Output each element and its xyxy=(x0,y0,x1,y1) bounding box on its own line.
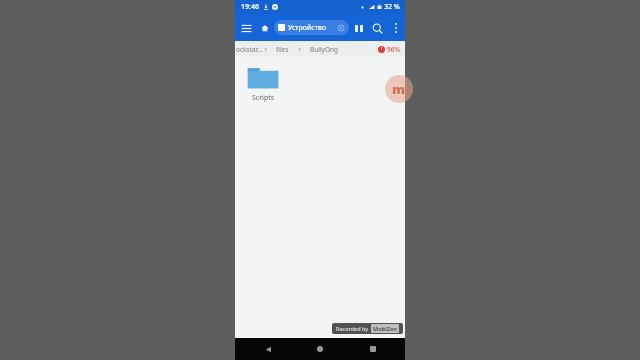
staticText: Устройство xyxy=(288,23,336,33)
button[interactable]: BullyOng xyxy=(310,45,339,54)
button[interactable]: ockstar... xyxy=(235,45,263,54)
button[interactable]: files xyxy=(276,45,289,54)
button[interactable]: Recent apps xyxy=(353,338,393,360)
button[interactable]: Home xyxy=(300,338,340,360)
staticText: m xyxy=(392,80,406,98)
button[interactable]: Устройство xyxy=(274,20,349,35)
button[interactable]: Menu xyxy=(235,17,257,39)
staticText: 32 % xyxy=(384,2,400,12)
staticText: 19:46 xyxy=(241,2,259,12)
button[interactable]: 96% xyxy=(378,45,405,54)
button[interactable]: More options xyxy=(387,19,405,37)
button[interactable]: Back xyxy=(248,338,288,360)
button[interactable]: Scripts xyxy=(243,64,283,103)
button[interactable]: Home xyxy=(257,20,273,36)
staticText: 96% xyxy=(387,45,400,54)
staticText: Scripts xyxy=(252,93,275,103)
button[interactable]: View mode xyxy=(351,20,367,36)
button[interactable]: Search xyxy=(367,18,387,38)
staticText: Recorded by xyxy=(336,325,369,332)
button[interactable]: Clear xyxy=(336,23,345,32)
staticText: MobiZen xyxy=(373,325,397,332)
